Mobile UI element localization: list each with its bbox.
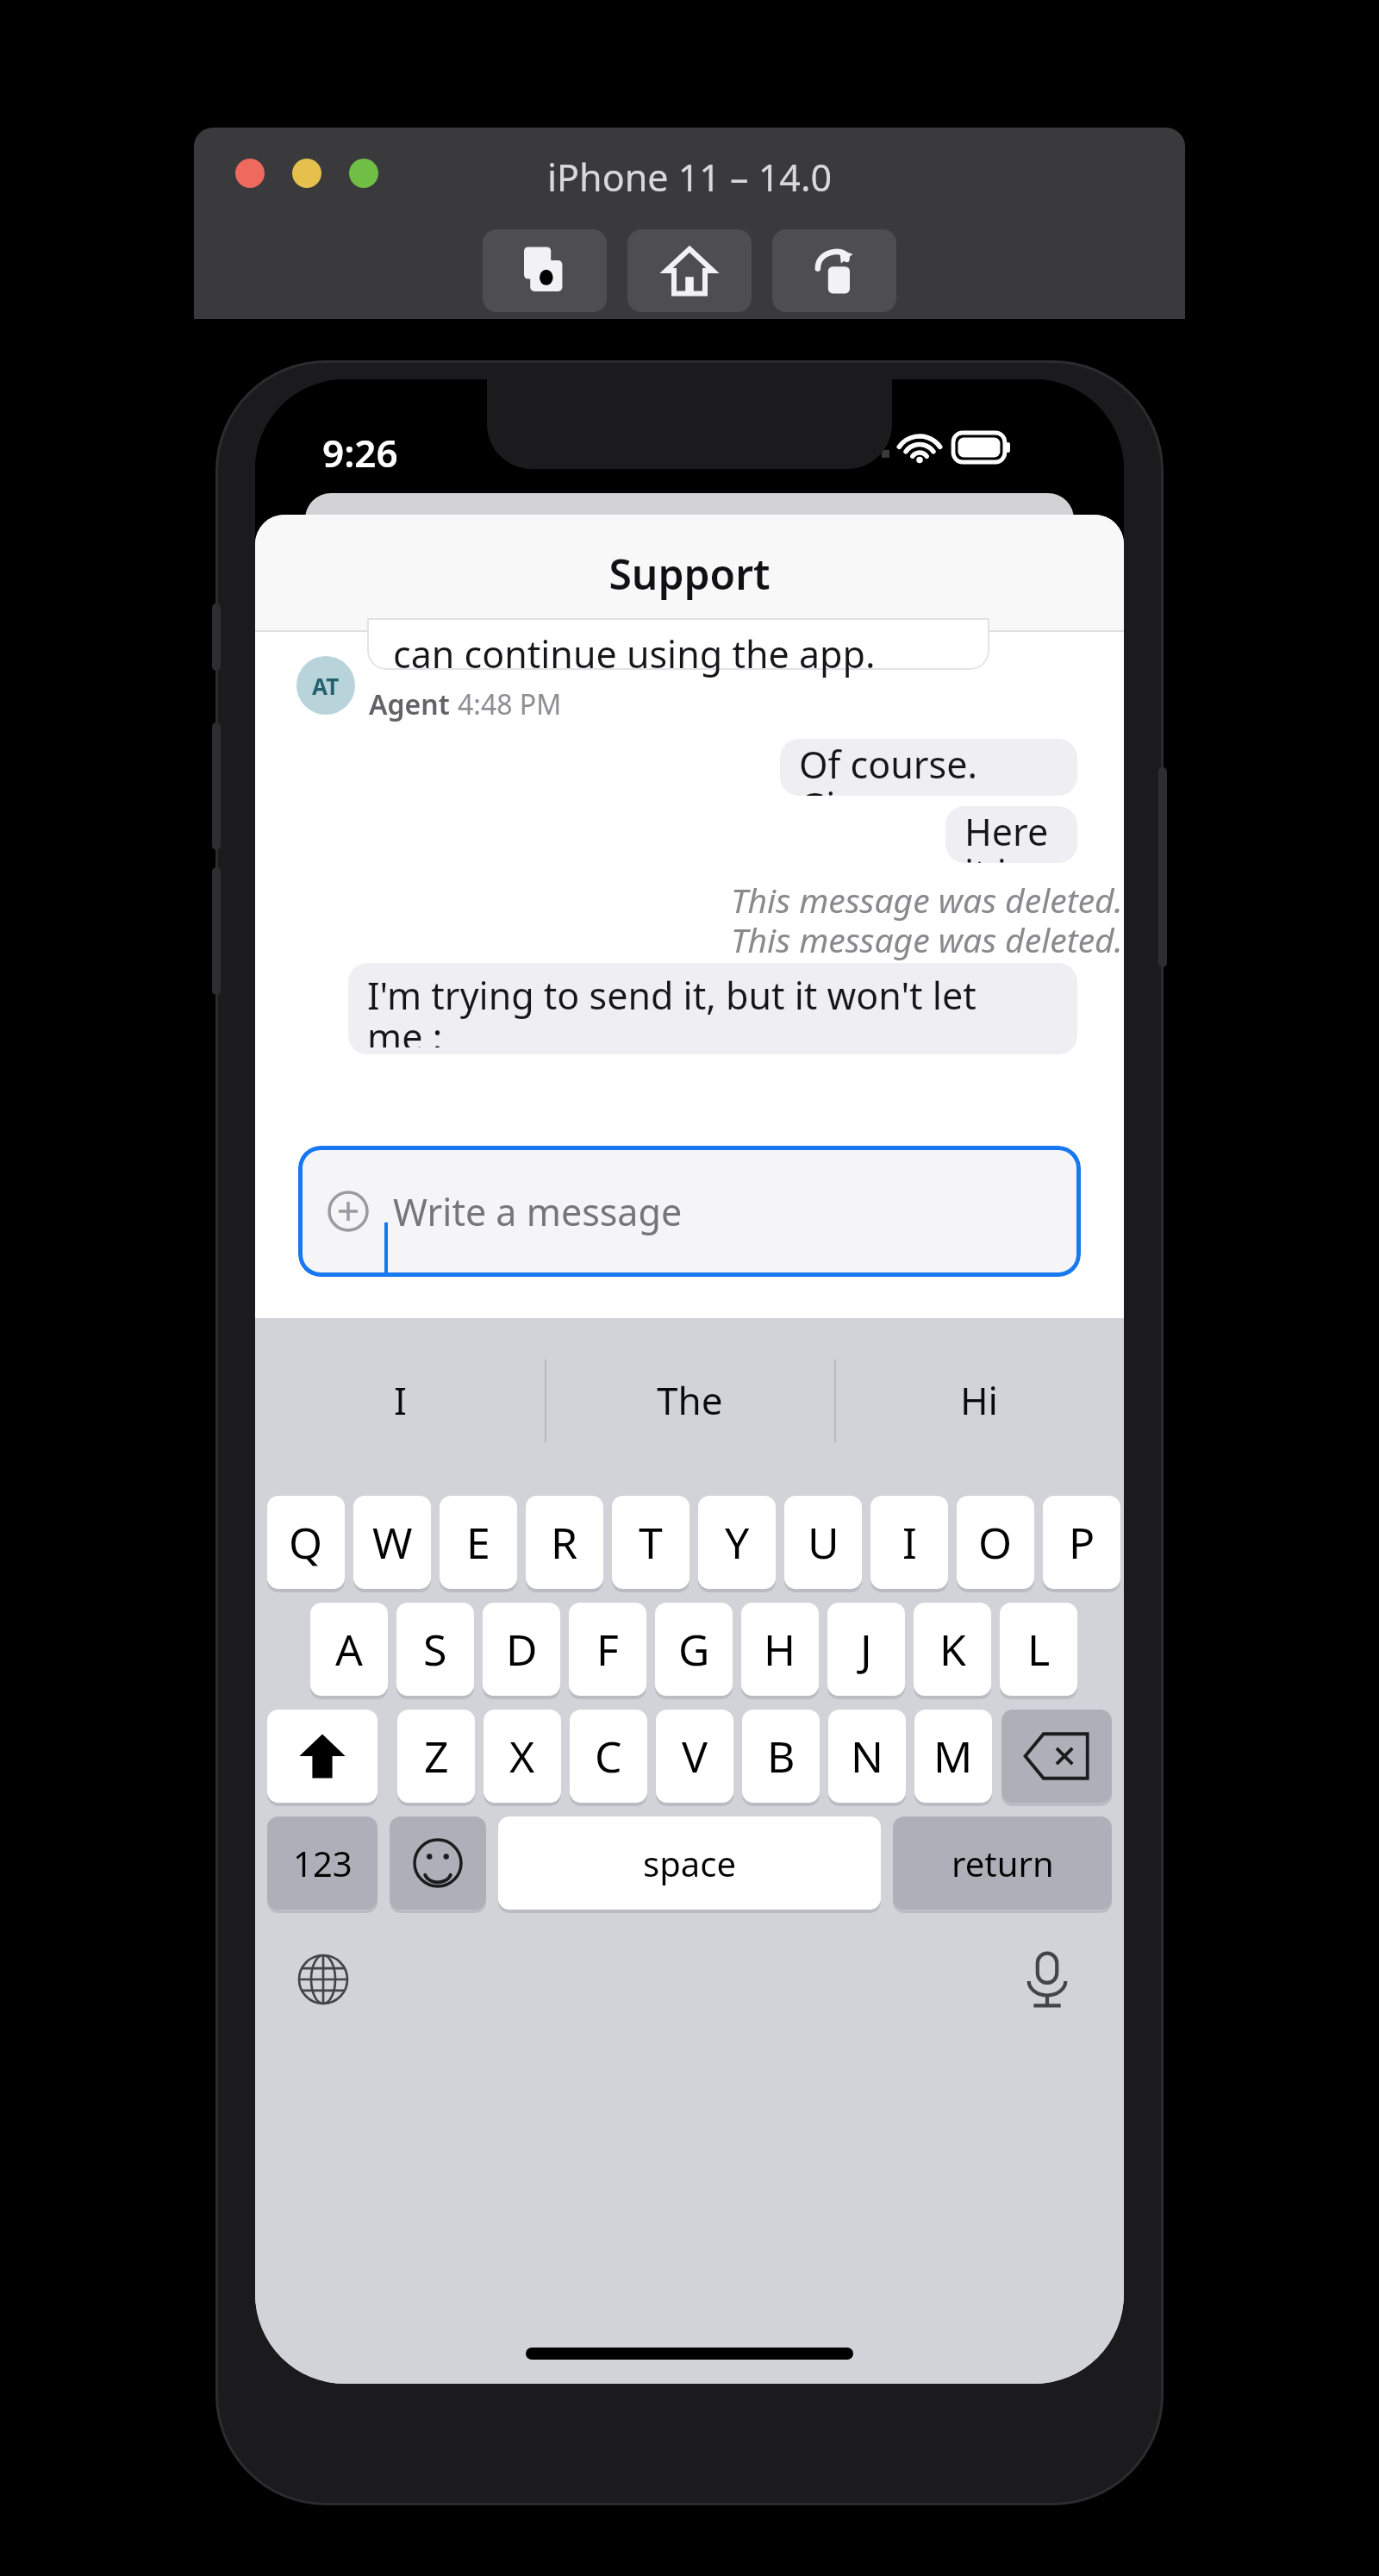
staticText: U (808, 1513, 839, 1572)
staticText: I (902, 1513, 917, 1572)
button[interactable]: T (612, 1496, 689, 1589)
button[interactable]: M (914, 1710, 992, 1803)
staticText: ********* (883, 1115, 1058, 1172)
button[interactable]: A (310, 1603, 388, 1696)
button[interactable]: X (484, 1710, 561, 1803)
staticText: B (767, 1727, 796, 1785)
button[interactable]: Hi (834, 1318, 1124, 1482)
staticText: 123 (293, 1840, 353, 1886)
button[interactable]: I (255, 1318, 545, 1482)
staticText: Agent (369, 685, 450, 723)
staticText: A (335, 1620, 363, 1679)
button[interactable]: return (893, 1816, 1112, 1910)
staticText: can continue using the app. (393, 628, 876, 679)
staticText: 4:48 PM (458, 685, 562, 723)
button[interactable]: Next keyboard (284, 1941, 362, 2018)
button[interactable]: C (570, 1710, 647, 1803)
button[interactable]: Q (267, 1496, 345, 1589)
button[interactable]: Here it is (945, 806, 1077, 863)
staticText: F (596, 1620, 619, 1679)
button[interactable]: Home (627, 229, 752, 312)
staticText: M (933, 1727, 973, 1785)
button[interactable]: Power (1158, 767, 1167, 967)
button[interactable]: W (353, 1496, 431, 1589)
button[interactable]: E (440, 1496, 517, 1589)
button[interactable]: Screenshot (483, 229, 607, 312)
button[interactable]: N (828, 1710, 906, 1803)
staticText: C (595, 1727, 622, 1785)
staticText: S (423, 1620, 447, 1679)
button[interactable]: Maximize (349, 159, 378, 188)
staticText: Support (608, 546, 771, 602)
staticText: T (639, 1513, 663, 1572)
button[interactable]: Emoji (390, 1816, 486, 1910)
staticText: Q (289, 1513, 323, 1572)
button[interactable]: B (742, 1710, 820, 1803)
button[interactable]: Shift (267, 1710, 378, 1803)
staticText: V (682, 1727, 708, 1785)
button[interactable]: Of course. Give me a second. (780, 739, 1077, 796)
button[interactable]: Volume down (212, 867, 221, 995)
button[interactable]: Add attachment (328, 1191, 369, 1232)
staticText: Here it is (964, 806, 1058, 863)
button[interactable]: R (526, 1496, 603, 1589)
button[interactable]: V (656, 1710, 733, 1803)
button[interactable]: I'm trying to send it, but it won't let … (348, 963, 1077, 1054)
staticText: iPhone 11 – 14.0 (194, 152, 1185, 203)
staticText: N (851, 1727, 883, 1785)
button[interactable]: D (483, 1603, 560, 1696)
button[interactable]: L (1000, 1603, 1077, 1696)
button[interactable]: Dictation (1008, 1941, 1086, 2018)
staticText: D (506, 1620, 538, 1679)
button[interactable]: 123 (267, 1816, 378, 1910)
staticText: This message was deleted. (731, 877, 1123, 922)
button[interactable]: S (396, 1603, 474, 1696)
staticText: W (372, 1513, 413, 1572)
staticText: O (978, 1513, 1013, 1572)
button[interactable]: J (827, 1603, 905, 1696)
button[interactable]: Trying another one: ********* and this (348, 1192, 1077, 1284)
staticText: This message was deleted. (731, 916, 1123, 962)
button[interactable]: P (1043, 1496, 1120, 1589)
button[interactable]: G (655, 1603, 733, 1696)
button[interactable]: Minimize (292, 159, 321, 188)
button[interactable]: F (569, 1603, 646, 1696)
button[interactable]: Add attachment (298, 1146, 1081, 1277)
button[interactable]: Mute (212, 603, 221, 671)
staticText: Y (725, 1513, 750, 1572)
button[interactable]: H (741, 1603, 819, 1696)
staticText: The (657, 1374, 723, 1426)
staticText: X (509, 1727, 535, 1785)
staticText: I (394, 1374, 407, 1426)
button[interactable]: Rotate (772, 229, 896, 312)
button[interactable]: U (784, 1496, 862, 1589)
button[interactable]: The (545, 1318, 834, 1482)
button[interactable]: ********* (864, 1115, 1077, 1172)
button[interactable]: K (914, 1603, 991, 1696)
staticText: R (551, 1513, 578, 1572)
button[interactable]: Y (698, 1496, 776, 1589)
staticText: 9:26 (322, 427, 398, 478)
staticText: J (860, 1620, 872, 1679)
staticText: G (678, 1620, 710, 1679)
button[interactable]: Volume up (212, 722, 221, 850)
staticText: H (764, 1620, 796, 1679)
staticText: Write a message (393, 1186, 683, 1237)
button[interactable]: Z (397, 1710, 475, 1803)
staticText: E (466, 1513, 490, 1572)
staticText: space (643, 1840, 736, 1886)
staticText: Hi (960, 1374, 998, 1426)
button[interactable]: space (498, 1816, 881, 1910)
staticText: one: ********* (367, 1250, 637, 1277)
button[interactable]: Close (235, 159, 265, 188)
staticText: MS (1089, 1309, 1122, 1339)
button[interactable]: Delete (1001, 1710, 1112, 1803)
button[interactable]: I (870, 1496, 948, 1589)
staticText: K (939, 1620, 966, 1679)
staticText: L (1027, 1620, 1051, 1679)
staticText: P (1069, 1513, 1095, 1572)
staticText: AT (312, 671, 340, 701)
button[interactable]: O (957, 1496, 1034, 1589)
staticText: return (952, 1840, 1054, 1886)
